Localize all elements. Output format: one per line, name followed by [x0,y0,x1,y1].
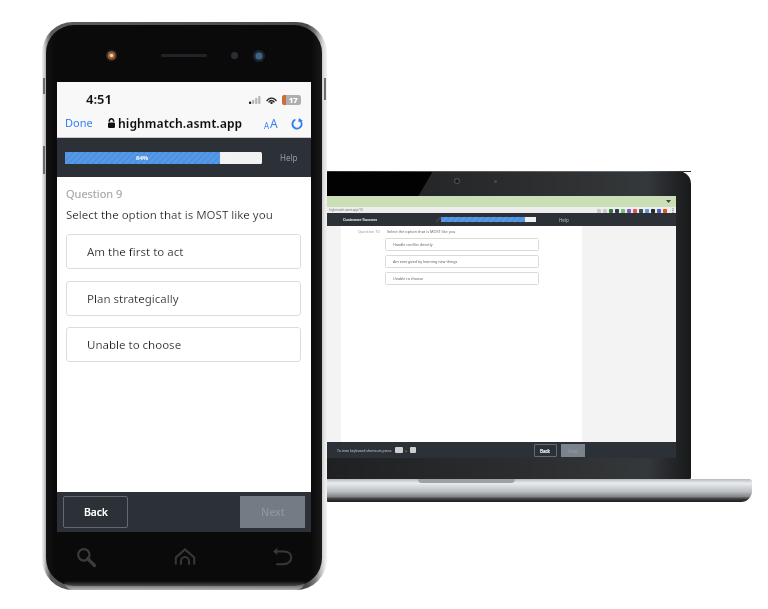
button[interactable]: Reload [289,116,304,131]
staticText: 64% [136,154,149,162]
staticText: Unable to choose [87,337,182,353]
staticText: 17 [289,95,298,105]
button[interactable]: Next [561,444,585,457]
button[interactable]: Done [65,115,93,130]
staticText: Question 10 [358,229,380,234]
staticText: 4:51 [86,90,112,108]
staticText: A [264,120,270,131]
staticText: Back [84,505,108,519]
staticText: + [405,448,408,453]
staticText: Back [540,448,551,454]
button[interactable]: Text size [264,115,278,131]
button[interactable]: Back [534,444,557,457]
staticText: Next [568,448,578,454]
staticText: Select the option that is MOST like you [387,229,456,234]
button[interactable]: Search [64,538,108,576]
staticText: highmatch.asmt.app [118,115,243,131]
button[interactable]: Next [240,496,305,528]
staticText: Select the option that is MOST like you [66,207,273,223]
button[interactable]: Back [63,496,128,528]
button[interactable]: Am the first to act [66,234,301,269]
button[interactable]: Handle conflict directly [385,238,539,251]
staticText: Help [280,152,298,163]
staticText: Next [261,505,285,519]
staticText: Plan strategically [87,291,179,307]
staticText: To view keyboard shortcuts press [337,448,392,453]
button[interactable]: Help [276,152,302,163]
staticText: Customer Success [343,217,378,222]
button[interactable]: Back [261,538,305,576]
button[interactable]: Help [559,217,569,223]
staticText: Handle conflict directly [393,242,433,247]
button[interactable]: Am energized by learning new things [385,255,539,268]
staticText: Am energized by learning new things [393,259,458,264]
staticText: Question 9 [66,186,123,201]
staticText: Unable to choose [393,276,424,281]
staticText: highmatch.asmt.app/10 [329,208,363,212]
staticText: Am the first to act [87,244,184,260]
button[interactable]: Unable to choose [385,272,539,285]
button[interactable]: Home [163,538,207,576]
button[interactable]: Unable to choose [66,327,301,362]
button[interactable]: Plan strategically [66,281,301,316]
staticText: A [270,115,278,131]
